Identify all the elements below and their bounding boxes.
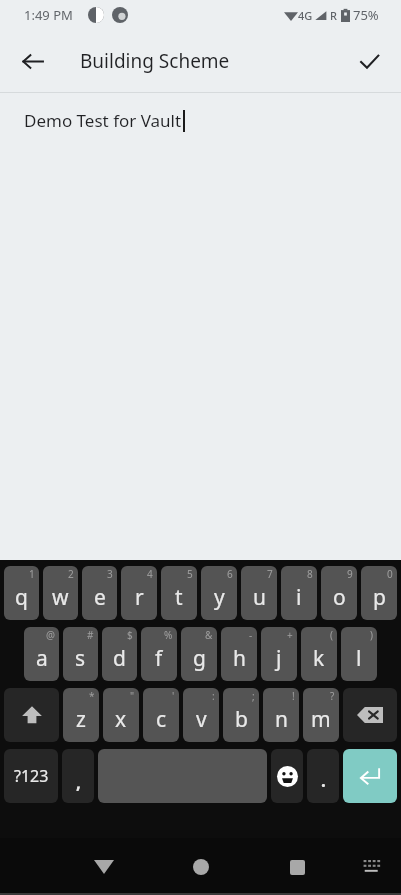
button[interactable]: ,	[62, 749, 94, 803]
staticText: 1	[29, 567, 35, 581]
staticText: 4	[147, 567, 153, 581]
staticText: #	[87, 628, 94, 642]
staticText: f	[155, 644, 163, 673]
staticText: .	[321, 769, 326, 792]
staticText: n	[275, 705, 288, 734]
staticText: k	[313, 644, 325, 673]
staticText: v	[196, 705, 207, 734]
staticText: g	[193, 644, 206, 673]
staticText: 4G	[298, 8, 313, 23]
button[interactable]: t	[161, 566, 197, 620]
button[interactable]: v	[183, 688, 219, 742]
button[interactable]: Enter	[343, 749, 397, 803]
staticText: 5	[187, 567, 193, 581]
staticText: y	[214, 583, 225, 612]
button[interactable]: Switch keyboard	[353, 847, 393, 887]
staticText: s	[75, 644, 86, 673]
button[interactable]: p	[361, 566, 397, 620]
staticText: x	[115, 705, 127, 734]
button[interactable]: Recents	[273, 843, 321, 891]
staticText: )	[370, 628, 373, 642]
staticText: "	[130, 689, 135, 703]
button[interactable]: g	[181, 627, 217, 681]
button[interactable]: b	[223, 688, 259, 742]
staticText: ,	[76, 771, 81, 794]
button[interactable]: y	[201, 566, 237, 620]
staticText: r	[135, 583, 144, 612]
button[interactable]: Emoji	[271, 749, 303, 803]
staticText: %	[164, 628, 173, 642]
button[interactable]: Back	[80, 843, 128, 891]
staticText: o	[333, 583, 346, 612]
staticText: 3	[107, 567, 113, 581]
button[interactable]: u	[241, 566, 277, 620]
staticText: l	[356, 644, 362, 673]
staticText: h	[233, 644, 246, 673]
staticText: !	[292, 689, 295, 703]
staticText: 2	[68, 567, 74, 581]
staticText: $	[127, 628, 133, 642]
button[interactable]: s	[63, 627, 98, 681]
button[interactable]: f	[141, 627, 177, 681]
button[interactable]: i	[281, 566, 317, 620]
staticText: 6	[227, 567, 233, 581]
staticText: 75%	[353, 6, 379, 24]
staticText: ?	[330, 689, 335, 703]
button[interactable]: Back	[10, 39, 54, 83]
staticText: +	[287, 628, 293, 642]
staticText: e	[94, 583, 106, 612]
button[interactable]: Shift	[4, 688, 59, 742]
staticText: 7	[267, 567, 273, 581]
staticText: 1:49 PM	[24, 6, 73, 24]
staticText: m	[311, 705, 331, 734]
staticText: ?123	[14, 765, 49, 787]
staticText: ;	[252, 689, 255, 703]
staticText: 8	[307, 567, 313, 581]
staticText: b	[235, 705, 248, 734]
staticText: i	[296, 583, 302, 612]
button[interactable]: o	[321, 566, 357, 620]
button[interactable]: Home	[177, 843, 225, 891]
staticText: *	[89, 689, 95, 703]
button[interactable]: x	[103, 688, 139, 742]
button[interactable]: w	[43, 566, 78, 620]
staticText: a	[36, 644, 48, 673]
button[interactable]: q	[4, 566, 39, 620]
staticText: d	[113, 644, 126, 673]
button[interactable]: e	[82, 566, 117, 620]
button[interactable]: Save	[347, 39, 391, 83]
button[interactable]: Backspace	[343, 688, 397, 742]
button[interactable]: ?123	[4, 749, 58, 803]
staticText: @	[46, 628, 55, 642]
staticText: Demo Test for Vault	[24, 109, 182, 132]
staticText: c	[156, 705, 167, 734]
button[interactable]: d	[102, 627, 137, 681]
button[interactable]: j	[261, 627, 297, 681]
staticText: :	[212, 689, 215, 703]
staticText: 0	[387, 567, 393, 581]
button[interactable]: m	[303, 688, 339, 742]
button[interactable]: h	[221, 627, 257, 681]
button[interactable]: r	[121, 566, 157, 620]
staticText: Building Scheme	[80, 48, 230, 74]
button[interactable]: c	[143, 688, 179, 742]
staticText: -	[249, 628, 253, 642]
staticText: '	[172, 689, 175, 703]
button[interactable]: n	[263, 688, 299, 742]
staticText: R	[330, 8, 337, 23]
staticText: &	[205, 628, 213, 642]
staticText: w	[52, 583, 69, 612]
staticText: 9	[347, 567, 353, 581]
button[interactable]: .	[307, 749, 339, 803]
staticText: p	[373, 583, 386, 612]
button[interactable]: Space	[98, 749, 267, 803]
button[interactable]: a	[24, 627, 59, 681]
button[interactable]: z	[63, 688, 99, 742]
button[interactable]: l	[341, 627, 377, 681]
staticText: (	[330, 628, 333, 642]
staticText: u	[253, 583, 266, 612]
staticText: t	[175, 583, 183, 612]
staticText: z	[76, 705, 86, 734]
staticText: q	[15, 583, 28, 612]
button[interactable]: k	[301, 627, 337, 681]
